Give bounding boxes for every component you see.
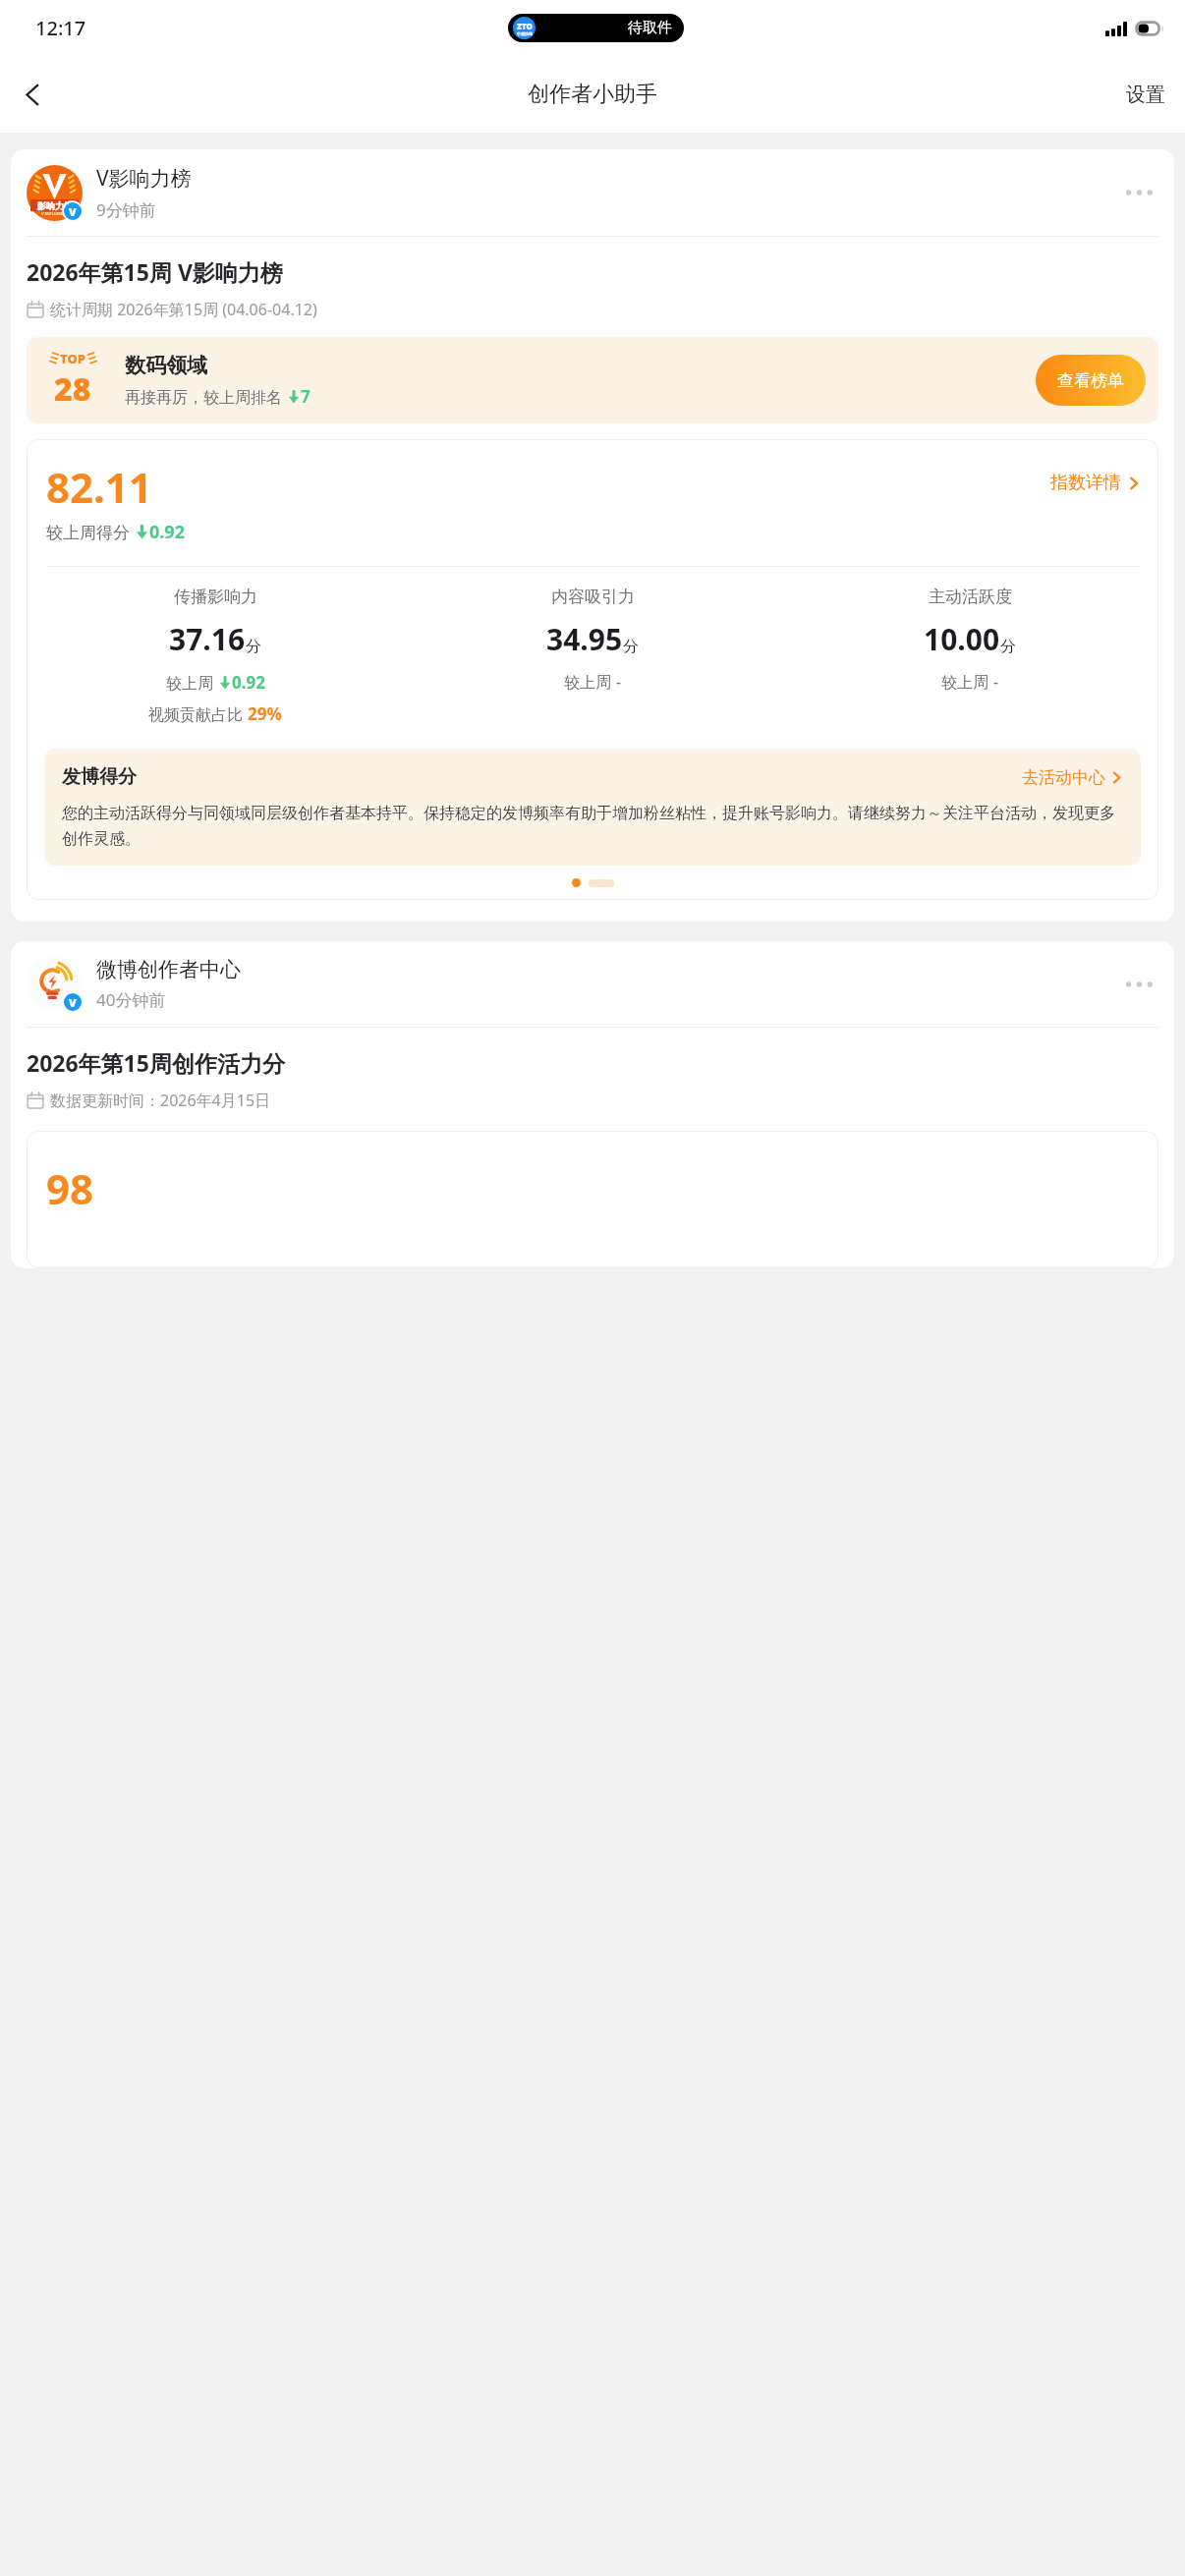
staticText: 7 <box>301 385 310 408</box>
staticText: 统计周期 2026年第15周 (04.06-04.12) <box>50 299 317 320</box>
button[interactable]: Back <box>8 70 57 119</box>
button[interactable]: More options <box>1117 963 1160 1006</box>
staticText: 再接再厉，较上周排名 <box>125 386 287 408</box>
staticText: 视频贡献占比 <box>148 703 248 725</box>
staticText: 28 <box>54 367 91 411</box>
button[interactable]: 设置 <box>1106 71 1185 119</box>
staticText: V INFLUENCE <box>41 211 68 216</box>
staticText: 分 <box>623 637 639 656</box>
staticText: 29% <box>248 702 282 725</box>
staticText: V <box>69 204 77 219</box>
staticText: 微博创作者中心 <box>96 957 241 982</box>
staticText: 发博得分 <box>62 765 1022 789</box>
staticText: - <box>993 671 999 693</box>
staticText: 2026年第15周创作活力分 <box>27 1047 285 1078</box>
button[interactable]: More options <box>1117 171 1160 214</box>
staticText: ZTO <box>517 21 533 31</box>
staticText: 数据更新时间：2026年4月15日 <box>50 1090 271 1111</box>
staticText: 37.16 <box>169 619 246 659</box>
button[interactable]: 查看榜单 <box>1036 355 1146 406</box>
staticText: 40分钟前 <box>96 988 166 1011</box>
button[interactable]: 去活动中心 <box>1022 767 1123 788</box>
staticText: 分 <box>246 637 261 656</box>
staticText: 0.92 <box>232 671 265 694</box>
staticText: 2026年第15周 V影响力榜 <box>27 256 283 287</box>
staticText: 10.00 <box>924 619 1000 659</box>
staticText: 较上周 <box>564 671 616 693</box>
button[interactable]: 影响力榜 <box>11 149 1174 236</box>
staticText: 您的主动活跃得分与同领域同层级创作者基本持平。保持稳定的发博频率有助于增加粉丝粘… <box>62 804 1123 849</box>
staticText: 82.11 <box>46 459 152 515</box>
staticText: 设置 <box>1126 83 1165 107</box>
staticText: V <box>69 995 77 1010</box>
staticText: 去活动中心 <box>1022 767 1105 788</box>
staticText: 分 <box>1000 637 1016 656</box>
staticText: V影响力榜 <box>96 164 192 193</box>
button[interactable]: 指数详情 <box>1050 472 1141 494</box>
staticText: - <box>616 671 622 693</box>
staticText: 12:17 <box>35 15 86 41</box>
staticText: 98 <box>46 1160 94 1216</box>
staticText: 较上周 <box>941 671 993 693</box>
staticText: 主动活跃度 <box>929 587 1012 607</box>
staticText: 待取件 <box>628 19 672 37</box>
staticText: 数码领域 <box>125 353 207 378</box>
staticText: 创作者小助手 <box>528 81 657 108</box>
staticText: 9分钟前 <box>96 198 156 221</box>
staticText: 较上周得分 <box>46 521 135 543</box>
staticText: 指数详情 <box>1050 472 1121 494</box>
button[interactable]: V <box>11 941 1174 1027</box>
staticText: 中通快递 <box>517 31 533 36</box>
staticText: 影响力榜 <box>37 200 73 211</box>
staticText: 内容吸引力 <box>551 587 635 607</box>
staticText: 0.92 <box>149 520 185 544</box>
staticText: 传播影响力 <box>174 587 257 607</box>
staticText: 较上周 <box>166 672 218 694</box>
staticText: 34.95 <box>546 619 623 659</box>
staticText: TOP <box>60 350 86 367</box>
button[interactable]: 发博得分 <box>44 749 1141 866</box>
staticText: 查看榜单 <box>1057 370 1124 391</box>
button[interactable]: TOP <box>27 337 1158 423</box>
